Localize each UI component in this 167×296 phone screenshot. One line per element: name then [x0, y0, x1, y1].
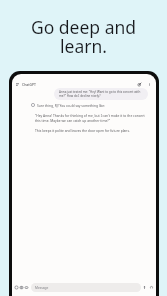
- button[interactable]: Camera: [19, 285, 24, 290]
- button[interactable]: New chat: [136, 81, 143, 88]
- button[interactable]: ChatGPT: [22, 82, 36, 87]
- staticText: Anna just texted me: "Hey! Want to go to…: [59, 90, 143, 98]
- button[interactable]: More options: [146, 81, 153, 88]
- staticText: "Hey Anna! Thanks for thinking of me, bu…: [35, 113, 148, 123]
- button[interactable]: Add: [14, 285, 19, 290]
- button[interactable]: Voice mode: [149, 285, 154, 290]
- button[interactable]: Voice input: [142, 285, 147, 290]
- staticText: Message: [35, 286, 49, 290]
- button[interactable]: Message: [31, 283, 141, 292]
- staticText: Go deep and learn.: [0, 15, 167, 58]
- staticText: Sure thing, RJ! You could say something …: [37, 103, 106, 107]
- button[interactable]: Photos: [24, 285, 29, 290]
- button[interactable]: Menu: [13, 80, 21, 88]
- staticText: This keeps it polite and leaves the door…: [35, 128, 130, 132]
- button[interactable]: Anna just texted me: "Hey! Want to go to…: [54, 88, 148, 100]
